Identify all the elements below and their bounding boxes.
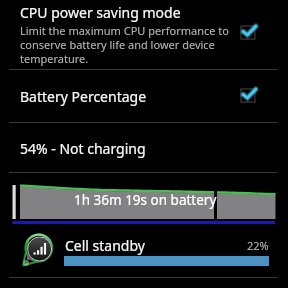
staticText: Limit the maximum CPU performance to con…: [20, 23, 231, 66]
staticText: Cell standby: [65, 236, 145, 255]
staticText: 1h 36m 19s on battery: [74, 191, 217, 209]
button[interactable]: Checkbox, checked: [241, 88, 261, 106]
button[interactable]: 54% - Not charging: [0, 123, 288, 172]
staticText: 54% - Not charging: [20, 139, 146, 158]
staticText: Battery Percentage: [20, 87, 147, 106]
button[interactable]: Checkbox, checked: [241, 25, 261, 43]
button[interactable]: Battery Percentage: [0, 70, 288, 122]
other: Cell standby: [22, 234, 54, 266]
button[interactable]: CPU power saving mode: [0, 0, 288, 69]
button[interactable]: Cell standby: [0, 230, 288, 277]
staticText: CPU power saving mode: [20, 3, 181, 22]
staticText: 22%: [247, 238, 269, 253]
